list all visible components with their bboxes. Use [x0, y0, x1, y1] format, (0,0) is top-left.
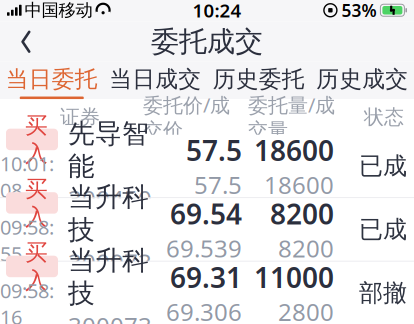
staticText: 8200 [270, 195, 334, 232]
staticText: 8200 [278, 232, 334, 264]
button[interactable]: 历史委托 [207, 62, 310, 99]
staticText: 300450 [68, 183, 152, 215]
staticText: 当日成交 [109, 65, 201, 93]
button[interactable]: 返回 [0, 22, 52, 62]
staticText: 当升科技 [68, 244, 149, 310]
staticText: 300073 [68, 310, 152, 324]
staticText: 中国移动 [25, 0, 93, 21]
staticText: 10:24 [192, 0, 241, 23]
staticText: 委托价/成交价 [143, 91, 230, 142]
staticText: 当日委托 [6, 65, 98, 93]
staticText: 买入 [25, 239, 48, 294]
staticText: 部撤 [359, 278, 407, 308]
staticText: 先导智能 [68, 117, 149, 183]
button[interactable]: 买入 [0, 198, 414, 261]
staticText: 69.31 [170, 258, 242, 296]
staticText: 委托成交 [151, 25, 263, 59]
staticText: 已成 [359, 215, 407, 244]
staticText: 57.5 [194, 169, 242, 201]
staticText: 2800 [278, 296, 334, 324]
staticText: 18600 [254, 131, 334, 169]
staticText: 09:58:16 [0, 277, 54, 324]
staticText: 证券 [60, 105, 100, 129]
staticText: 买入 [25, 112, 48, 167]
staticText: 当升科技 [68, 181, 149, 246]
staticText: 69.306 [166, 296, 242, 324]
staticText: 已成 [359, 151, 407, 181]
button[interactable]: 当日成交 [103, 62, 207, 99]
staticText: 委托量/成交量 [248, 91, 335, 142]
staticText: 状态 [364, 105, 404, 129]
staticText: 10:01:08 [0, 150, 54, 203]
staticText: 11000 [254, 258, 334, 296]
staticText: 53% [341, 0, 376, 22]
button[interactable]: 买入 [0, 262, 414, 324]
staticText: 57.5 [186, 131, 242, 169]
staticText: 09:58:55 [0, 214, 54, 267]
staticText: 历史委托 [213, 65, 305, 93]
staticText: 300073 [68, 246, 152, 278]
staticText: 18600 [264, 169, 334, 201]
button[interactable]: 买入 [0, 135, 414, 197]
staticText: 69.54 [170, 195, 242, 232]
staticText: 历史成交 [316, 65, 408, 93]
staticText: 买入 [25, 175, 48, 231]
button[interactable]: 历史成交 [310, 62, 414, 99]
button[interactable]: 当日委托 [0, 62, 103, 99]
staticText: 69.539 [166, 232, 242, 264]
